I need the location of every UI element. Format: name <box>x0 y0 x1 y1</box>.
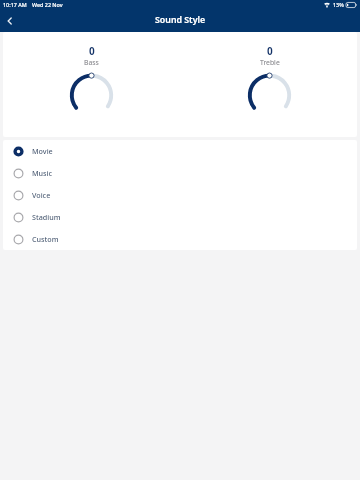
staticText: 0 <box>267 44 273 58</box>
button[interactable]: Voice <box>3 184 357 206</box>
button[interactable]: Treble level 0 <box>180 32 357 137</box>
staticText: 10:17 AM <box>3 1 27 8</box>
staticText: Wed 22 Nov <box>32 1 63 8</box>
staticText: 13% <box>333 1 344 8</box>
staticText: Treble <box>260 58 280 67</box>
button[interactable]: Custom <box>3 228 357 250</box>
staticText: Movie <box>32 146 53 156</box>
button[interactable]: Back <box>0 11 20 30</box>
staticText: Music <box>32 168 53 178</box>
staticText: Stadium <box>32 212 61 222</box>
staticText: Custom <box>32 234 59 244</box>
button[interactable]: Movie <box>3 140 357 162</box>
button[interactable]: Stadium <box>3 206 357 228</box>
button[interactable]: Music <box>3 162 357 184</box>
staticText: Sound Style <box>155 14 206 26</box>
button[interactable]: Bass level 0 <box>3 32 180 137</box>
staticText: 0 <box>89 44 95 58</box>
staticText: Bass <box>84 58 99 67</box>
staticText: Voice <box>32 190 51 200</box>
